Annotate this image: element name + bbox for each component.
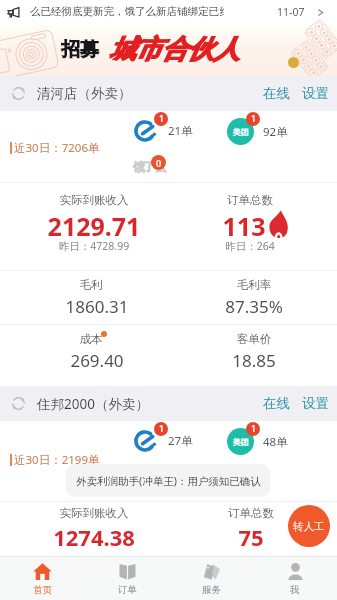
staticText: 87.35%: [174, 295, 334, 318]
staticText: 么已经彻底更新完，饿了么新店铺绑定已纟: [30, 5, 250, 18]
staticText: 18.85: [174, 349, 334, 372]
staticText: 269.40: [17, 349, 177, 372]
staticText: 清河店（外卖）: [37, 85, 132, 102]
staticText: 饿了么: [133, 159, 165, 174]
other: Refresh: [10, 395, 27, 412]
staticText: 113: [164, 209, 324, 243]
staticText: 27单: [168, 433, 193, 449]
staticText: 92单: [263, 124, 288, 140]
other: Refresh: [10, 85, 27, 102]
button[interactable]: 转人工: [288, 505, 330, 547]
button[interactable]: 设置: [297, 80, 334, 107]
staticText: 近30日：7206单: [14, 140, 100, 156]
staticText: 在线: [263, 85, 290, 102]
button[interactable]: 毛利: [21, 278, 161, 292]
staticText: 1: [251, 423, 256, 435]
button[interactable]: 服务: [169, 557, 253, 600]
button[interactable]: 订单总数: [180, 193, 320, 207]
button[interactable]: 在线: [258, 80, 295, 107]
staticText: 城市合伙人: [110, 33, 240, 66]
staticText: 毛利: [21, 278, 161, 292]
button[interactable]: 实际到账收入: [24, 506, 164, 520]
staticText: 1860.31: [17, 295, 177, 318]
staticText: 美团: [233, 127, 249, 137]
staticText: 转人工: [293, 520, 325, 533]
staticText: 近30日：2199单: [14, 452, 100, 468]
other: Announcement: [7, 6, 21, 20]
button[interactable]: 实际到账收入: [24, 193, 164, 207]
staticText: 11-07: [277, 5, 305, 19]
staticText: 城市合伙人: [109, 33, 239, 66]
staticText: 48单: [263, 434, 288, 450]
button[interactable]: 成本: [21, 332, 161, 346]
staticText: 75: [171, 522, 331, 552]
staticText: 订单: [118, 584, 137, 596]
staticText: 客单价: [184, 332, 324, 346]
staticText: 2129.71: [14, 209, 174, 243]
button[interactable]: 我: [253, 557, 337, 600]
staticText: 0: [156, 157, 162, 169]
staticText: 毛利率: [184, 278, 324, 292]
staticText: 1: [159, 423, 164, 435]
button[interactable]: 毛利率: [184, 278, 324, 292]
button[interactable]: 订单: [85, 557, 169, 600]
staticText: 1274.38: [14, 522, 174, 552]
staticText: 首页: [33, 584, 52, 596]
staticText: 成本: [21, 332, 161, 346]
button[interactable]: 设置: [297, 390, 334, 417]
button[interactable]: 客单价: [184, 332, 324, 346]
button[interactable]: 首页: [0, 557, 85, 600]
staticText: 外卖利润助手(冲单王)：用户须知已确认: [76, 474, 261, 488]
staticText: 21单: [168, 123, 193, 139]
staticText: 昨日：264: [180, 239, 320, 253]
staticText: 1: [159, 113, 164, 125]
staticText: 服务: [202, 584, 221, 596]
staticText: 实际到账收入: [24, 506, 164, 520]
staticText: 1: [251, 113, 256, 125]
staticText: 订单总数: [181, 506, 321, 520]
button[interactable]: 在线: [258, 390, 295, 417]
staticText: 实际到账收入: [24, 193, 164, 207]
staticText: 我: [290, 584, 300, 596]
staticText: 订单总数: [180, 193, 320, 207]
staticText: 美团: [233, 437, 249, 447]
staticText: 设置: [302, 395, 329, 412]
button[interactable]: 招募: [0, 26, 337, 76]
staticText: 设置: [302, 85, 329, 102]
staticText: 住邦2000（外卖）: [37, 395, 149, 413]
staticText: 招募: [61, 38, 99, 62]
staticText: 昨日：4728.99: [24, 239, 164, 253]
button[interactable]: 订单总数: [181, 506, 321, 520]
staticText: 在线: [263, 395, 290, 412]
button[interactable]: Announcement: [0, 0, 337, 26]
